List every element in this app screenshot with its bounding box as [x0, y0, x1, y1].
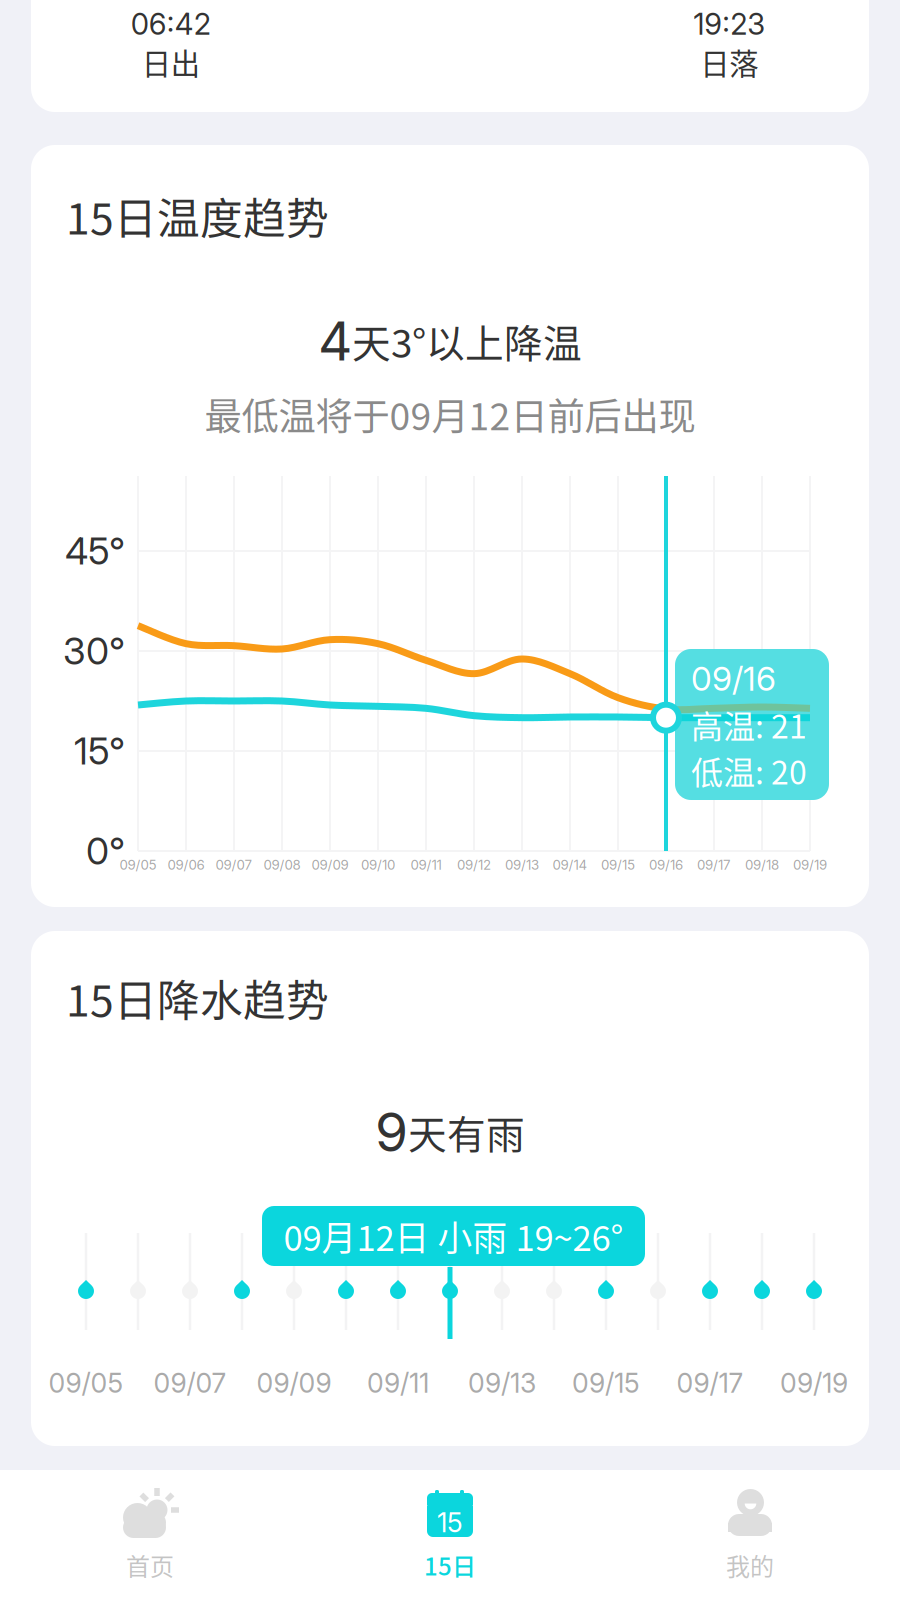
staticText: 09/10 — [361, 857, 395, 873]
staticText: 15° — [74, 728, 125, 774]
staticText: 4 — [318, 309, 352, 373]
staticText: 09/19 — [793, 857, 827, 873]
staticText: 09/15 — [572, 1367, 640, 1399]
staticText: 15日温度趋势 — [66, 185, 329, 247]
staticText: 09/16 — [649, 857, 683, 873]
staticText: 06:42 — [131, 6, 211, 42]
staticText: 09/08 — [263, 857, 300, 873]
staticText: 09/13 — [505, 857, 539, 873]
staticText: 0° — [86, 828, 125, 874]
button[interactable]: 首页 — [0, 1470, 300, 1600]
staticText: 30° — [63, 628, 125, 674]
staticText: 09/07 — [153, 1367, 226, 1399]
staticText: 09月12日 小雨 19~26° — [283, 1211, 623, 1261]
staticText: 09/11 — [410, 857, 441, 873]
staticText: 09/16 — [691, 658, 776, 699]
staticText: 09/09 — [311, 857, 348, 873]
staticText: 09/17 — [676, 1367, 743, 1399]
staticText: 高温: 21 — [691, 701, 807, 748]
staticText: 09/09 — [256, 1367, 331, 1399]
staticText: 15日 — [424, 1548, 476, 1582]
staticText: 09/06 — [167, 857, 204, 873]
staticText: 最低温将于09月12日前后出现 — [204, 387, 695, 441]
button[interactable]: 我的 — [600, 1470, 900, 1600]
staticText: 09/15 — [601, 857, 635, 873]
staticText: 天有雨 — [408, 1104, 525, 1160]
button[interactable]: 15 — [300, 1470, 600, 1600]
staticText: 19:23 — [693, 6, 765, 42]
staticText: 09/18 — [745, 857, 779, 873]
staticText: 日落 — [700, 41, 758, 83]
staticText: 15日降水趋势 — [66, 967, 329, 1029]
staticText: 日出 — [142, 41, 200, 83]
staticText: 9 — [375, 1100, 408, 1164]
staticText: 09/12 — [457, 857, 491, 873]
staticText: 低温: 20 — [691, 747, 807, 794]
staticText: 15 — [437, 1506, 463, 1539]
staticText: 09/13 — [468, 1367, 536, 1399]
staticText: 我的 — [726, 1548, 774, 1582]
staticText: 09/19 — [780, 1367, 848, 1399]
staticText: 天3°以上降温 — [352, 313, 582, 369]
staticText: 09/05 — [119, 857, 156, 873]
staticText: 首页 — [126, 1548, 174, 1582]
staticText: 09/07 — [215, 857, 252, 873]
staticText: 09/14 — [552, 857, 587, 873]
staticText: 09/11 — [367, 1367, 429, 1399]
staticText: 09/17 — [697, 857, 731, 873]
staticText: 45° — [65, 528, 125, 574]
staticText: 09/05 — [48, 1367, 123, 1399]
